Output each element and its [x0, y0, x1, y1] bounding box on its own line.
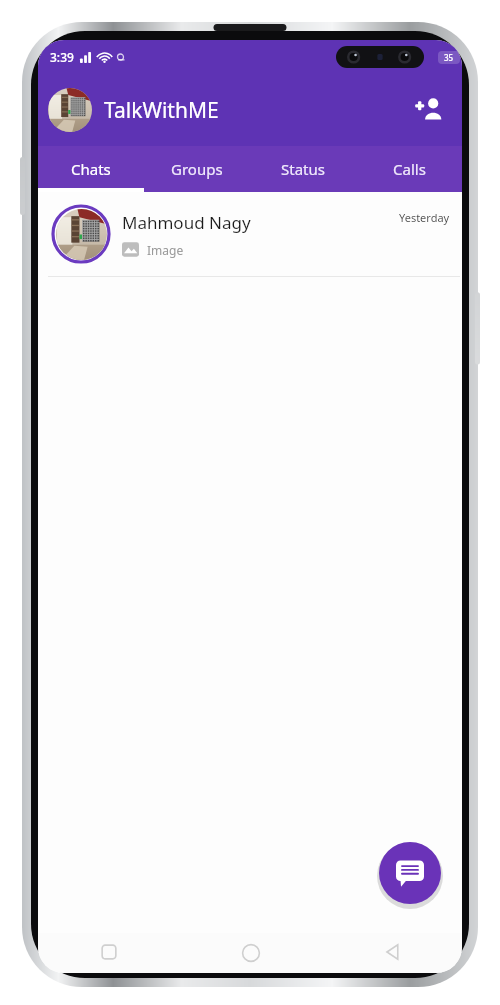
button[interactable]: Mahmoud Nagy — [38, 192, 462, 276]
button[interactable]: Groups — [144, 146, 250, 192]
staticText: Status — [281, 159, 325, 179]
staticText: Chats — [71, 159, 111, 179]
staticText: 35 — [444, 52, 454, 63]
staticText: Image — [147, 242, 184, 258]
button[interactable] — [48, 88, 92, 132]
button[interactable]: Back — [321, 943, 462, 973]
button[interactable]: Recent apps — [38, 943, 180, 973]
staticText: Calls — [393, 159, 426, 179]
staticText: Groups — [171, 159, 223, 179]
button[interactable]: Status — [250, 146, 356, 192]
button[interactable]: Home — [180, 943, 321, 973]
button[interactable]: Calls — [356, 146, 462, 192]
button[interactable]: Add contact — [408, 89, 450, 131]
staticText: TalkWithME — [104, 96, 219, 125]
button[interactable]: Chats — [38, 146, 144, 192]
staticText: Yesterday — [399, 210, 450, 225]
staticText: Mahmoud Nagy — [122, 211, 251, 234]
button[interactable]: New chat — [379, 842, 441, 904]
staticText: 3:39 — [50, 49, 74, 65]
